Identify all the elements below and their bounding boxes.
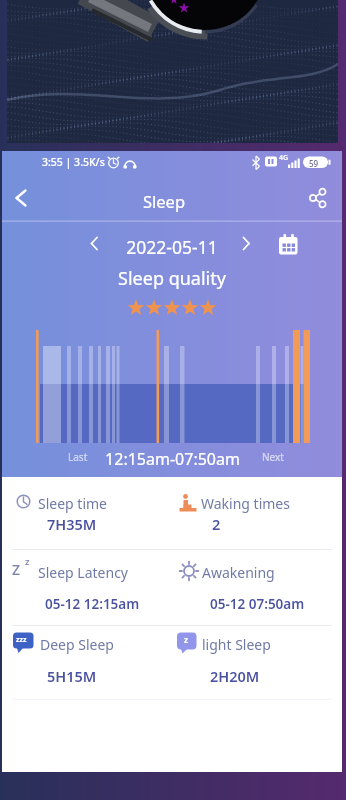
staticText: zzz	[16, 635, 27, 645]
staticText: 5H15M	[47, 666, 97, 686]
button[interactable]	[2, 626, 172, 699]
staticText: Sleep time	[38, 494, 107, 513]
button[interactable]	[2, 550, 172, 625]
staticText: Sleep Latency	[38, 563, 128, 582]
staticText: Z	[12, 560, 21, 579]
staticText: Last	[68, 450, 88, 464]
staticText: Awakening	[202, 563, 275, 582]
button[interactable]	[2, 477, 172, 549]
staticText: 2H20M	[210, 666, 260, 686]
staticText: 2	[212, 514, 221, 534]
staticText: Sleep quality	[118, 266, 226, 291]
staticText: Waking times	[201, 494, 290, 513]
staticText: Next	[262, 450, 284, 464]
staticText: 59	[309, 158, 319, 169]
button[interactable]	[8, 184, 36, 212]
button[interactable]	[172, 477, 342, 549]
button[interactable]	[172, 550, 342, 625]
staticText: Sleep	[143, 190, 186, 212]
staticText: light Sleep	[202, 635, 271, 654]
staticText: 05-12 12:15am	[45, 595, 140, 613]
staticText: 4G	[279, 153, 289, 163]
staticText: 2022-05-11	[126, 235, 218, 259]
button[interactable]	[304, 184, 332, 212]
button[interactable]	[172, 626, 342, 699]
staticText: z	[25, 555, 30, 568]
staticText: Deep Sleep	[40, 635, 114, 654]
button[interactable]	[274, 230, 302, 258]
staticText: z	[184, 634, 188, 645]
staticText: 7H35M	[47, 514, 97, 534]
staticText: 12:15am-07:50am	[105, 448, 240, 470]
button[interactable]	[236, 232, 258, 254]
staticText: 3:55 | 3.5K/s	[42, 155, 105, 169]
button[interactable]	[84, 232, 106, 254]
staticText: 05-12 07:50am	[210, 595, 305, 613]
